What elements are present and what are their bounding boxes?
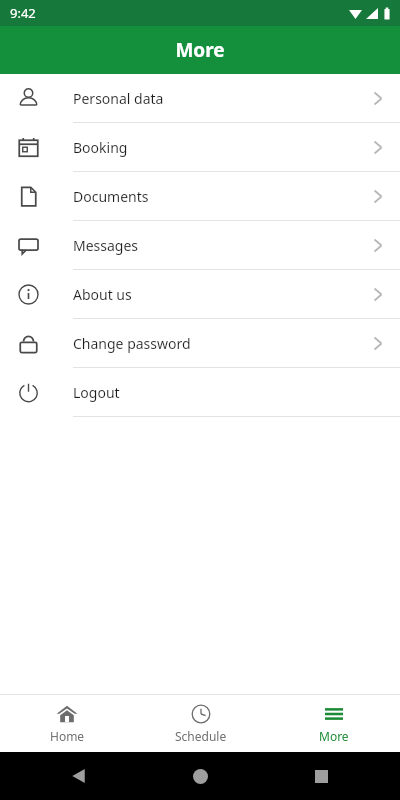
button[interactable]: More xyxy=(267,695,400,752)
other: Back xyxy=(71,768,87,784)
button[interactable]: Logout xyxy=(0,368,400,417)
button[interactable]: Home xyxy=(0,695,134,752)
button[interactable]: Booking xyxy=(0,123,400,172)
staticText: Personal data xyxy=(73,89,164,108)
button[interactable]: About us xyxy=(0,270,400,319)
button[interactable]: Personal data xyxy=(0,74,400,123)
staticText: Booking xyxy=(73,138,128,157)
staticText: Logout xyxy=(73,383,120,402)
staticText: More xyxy=(319,728,349,744)
staticText: More xyxy=(175,37,225,63)
other: Home xyxy=(193,769,208,784)
button[interactable]: Documents xyxy=(0,172,400,221)
staticText: Home xyxy=(50,728,85,744)
staticText: Messages xyxy=(73,236,139,255)
staticText: Change password xyxy=(73,334,191,353)
staticText: 9:42 xyxy=(10,4,36,22)
staticText: About us xyxy=(73,285,132,304)
button[interactable]: Messages xyxy=(0,221,400,270)
staticText: Schedule xyxy=(175,728,227,744)
staticText: Documents xyxy=(73,187,149,206)
button[interactable]: Change password xyxy=(0,319,400,368)
button[interactable]: Schedule xyxy=(134,695,267,752)
